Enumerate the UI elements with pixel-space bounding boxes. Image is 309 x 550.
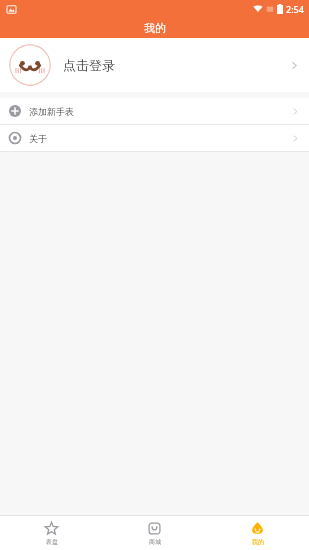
staticText: 表盘 — [46, 538, 58, 546]
button[interactable]: Mine — [206, 516, 309, 550]
button[interactable]: 点击登录 — [0, 38, 309, 92]
button[interactable]: 关于 — [0, 125, 309, 151]
staticText: 我的 — [144, 21, 166, 35]
button[interactable]: 添加新手表 — [0, 98, 309, 124]
button[interactable]: Store — [103, 516, 206, 550]
staticText: 商城 — [149, 538, 161, 546]
staticText: 点击登录 — [63, 57, 115, 73]
staticText: 我的 — [252, 538, 264, 546]
staticText: 2:54 — [286, 3, 304, 15]
staticText: 关于 — [29, 133, 47, 144]
button[interactable]: Watch faces — [0, 516, 103, 550]
staticText: 添加新手表 — [29, 106, 74, 117]
